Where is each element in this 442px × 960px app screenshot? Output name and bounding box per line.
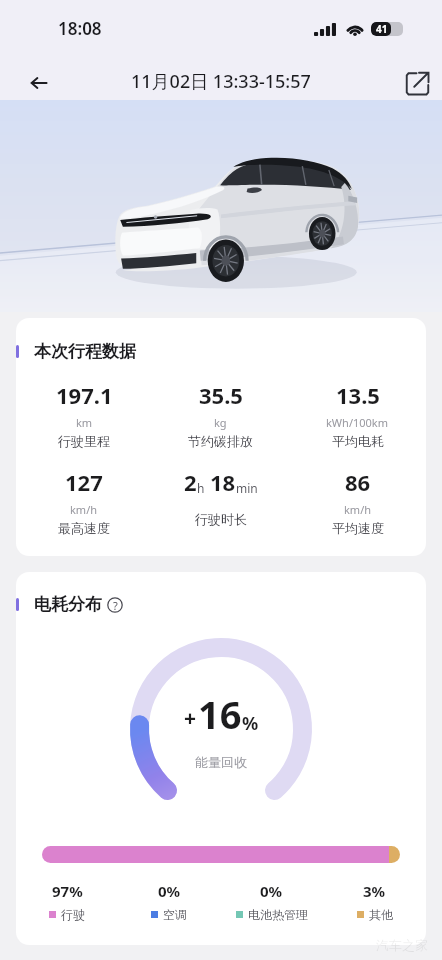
staticText: 35.5 — [199, 380, 243, 410]
staticText: % — [242, 711, 259, 736]
staticText: 86 — [345, 467, 371, 497]
staticText: min — [236, 480, 258, 496]
staticText: 3% — [363, 881, 386, 901]
staticText: km/h — [344, 502, 372, 517]
staticText: + — [184, 704, 197, 733]
staticText: 能量回收 — [195, 754, 247, 770]
staticText: kWh/100km — [326, 415, 389, 430]
staticText: 18:08 — [58, 17, 102, 40]
staticText: 2 — [184, 467, 197, 497]
staticText: 电池热管理 — [248, 907, 308, 922]
staticText: 41 — [376, 22, 388, 36]
staticText: 空调 — [163, 907, 187, 922]
staticText: 本次行程数据 — [34, 341, 136, 362]
staticText: 16 — [198, 688, 242, 740]
staticText: 197.1 — [56, 380, 113, 410]
staticText: km/h — [70, 502, 98, 517]
button[interactable]: Share — [400, 66, 434, 100]
staticText: 18 — [210, 467, 236, 497]
staticText: 0% — [158, 881, 181, 901]
staticText: 127 — [65, 467, 103, 497]
staticText: 13.5 — [336, 380, 380, 410]
staticText: km — [76, 415, 93, 430]
staticText: 节约碳排放 — [188, 433, 253, 449]
staticText: 平均电耗 — [332, 433, 384, 449]
staticText: 行驶 — [61, 907, 85, 922]
staticText: h — [197, 480, 205, 496]
button[interactable]: Back — [21, 65, 56, 100]
staticText: 最高速度 — [58, 520, 110, 536]
staticText: 其他 — [369, 907, 393, 922]
staticText: 0% — [260, 881, 283, 901]
staticText: 97% — [52, 881, 83, 901]
staticText: kg — [214, 415, 227, 430]
staticText: 行驶时长 — [195, 511, 247, 527]
staticText: ? — [113, 598, 118, 613]
staticText: 11月02日 13:33-15:57 — [131, 69, 311, 94]
staticText: 电耗分布 — [34, 594, 102, 615]
staticText: 平均速度 — [332, 520, 384, 536]
staticText: 汽车之家 — [376, 937, 428, 953]
staticText: 行驶里程 — [58, 433, 110, 449]
